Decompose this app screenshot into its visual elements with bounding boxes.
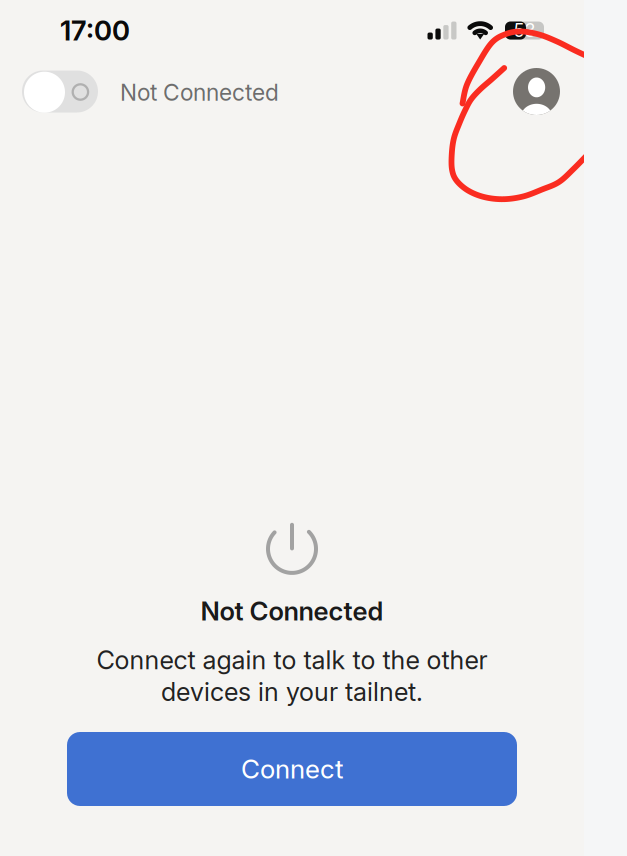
staticText: 53 [513,20,535,41]
button[interactable]: Connect [67,732,517,806]
staticText: Connect [241,753,343,785]
button[interactable]: Account [513,68,560,115]
staticText: Not Connected [120,79,279,106]
button[interactable]: Connection toggle, off [22,70,98,112]
staticText: Not Connected [200,595,383,627]
staticText: devices in your tailnet. [161,676,423,707]
staticText: Connect again to talk to the other [96,645,487,675]
staticText: 17:00 [60,14,130,47]
